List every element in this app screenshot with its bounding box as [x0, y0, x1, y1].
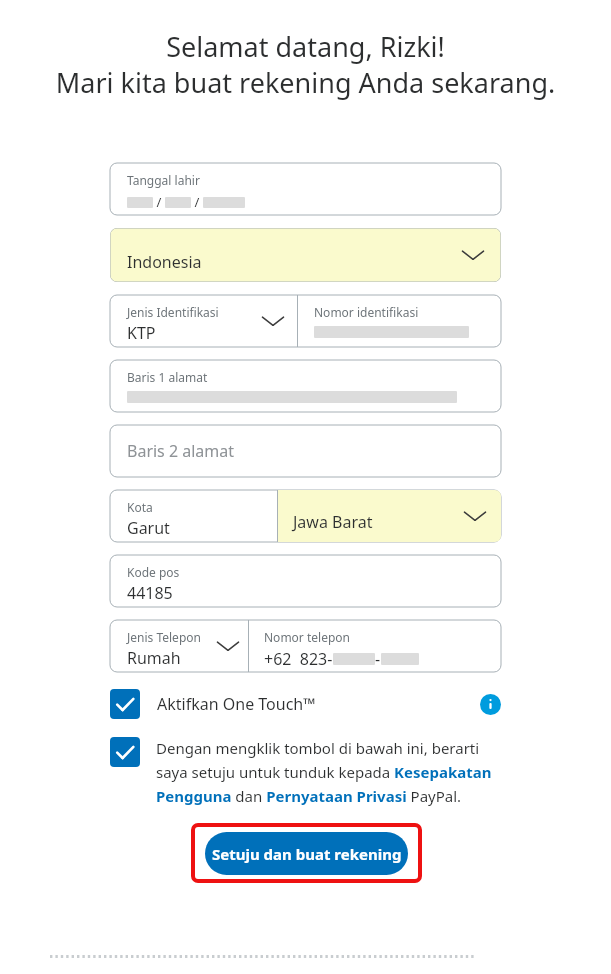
- button[interactable]: Setuju dan buat rekening: [205, 832, 408, 875]
- button[interactable]: Jenis Telepon: [110, 620, 248, 672]
- button[interactable]: Baris 2 alamat: [110, 425, 501, 477]
- staticText: Tanggal lahir: [127, 172, 200, 188]
- staticText: Aktifkan One Touch™: [157, 693, 316, 715]
- button[interactable]: Checked checkbox: [110, 737, 140, 767]
- staticText: /: [191, 193, 203, 211]
- staticText: Kode pos: [127, 564, 180, 580]
- button[interactable]: Jenis Identifikasi: [110, 295, 297, 347]
- button[interactable]: Checked checkbox: [110, 689, 140, 719]
- button[interactable]: Indonesia: [110, 228, 501, 282]
- button[interactable]: Checked checkbox: [110, 737, 501, 806]
- button[interactable]: More information: [480, 694, 501, 715]
- button[interactable]: Baris 1 alamat: [110, 360, 501, 412]
- staticText: Nomor identifikasi: [314, 304, 419, 320]
- button[interactable]: Tanggal lahir: [110, 163, 501, 215]
- staticText: /: [153, 193, 165, 211]
- button[interactable]: Nomor identifikasi: [298, 295, 501, 347]
- staticText: Baris 1 alamat: [127, 369, 208, 385]
- staticText: Garut: [127, 517, 170, 539]
- staticText: Selamat datang, Rizki! Mari kita buat re…: [55, 28, 556, 101]
- staticText: Dengan mengklik tombol di bawah ini, ber…: [156, 738, 501, 806]
- staticText: Setuju dan buat rekening: [212, 844, 402, 864]
- staticText: Kota: [127, 499, 153, 515]
- staticText: 44185: [127, 582, 173, 604]
- staticText: KTP: [127, 322, 156, 344]
- staticText: Jenis Telepon: [127, 629, 201, 645]
- staticText: +62 823-: [264, 648, 333, 670]
- button[interactable]: Checked checkbox: [110, 689, 501, 719]
- staticText: -: [375, 648, 381, 670]
- staticText: Jawa Barat: [293, 511, 373, 533]
- button[interactable]: Kota: [110, 490, 277, 542]
- button[interactable]: Kode pos: [110, 555, 501, 607]
- staticText: Indonesia: [127, 251, 202, 273]
- staticText: Nomor telepon: [264, 629, 350, 645]
- staticText: Rumah: [127, 647, 181, 669]
- button[interactable]: Nomor telepon: [249, 620, 501, 672]
- button[interactable]: Jawa Barat: [278, 490, 501, 542]
- staticText: Jenis Identifikasi: [127, 304, 219, 320]
- staticText: Baris 2 alamat: [127, 440, 235, 462]
